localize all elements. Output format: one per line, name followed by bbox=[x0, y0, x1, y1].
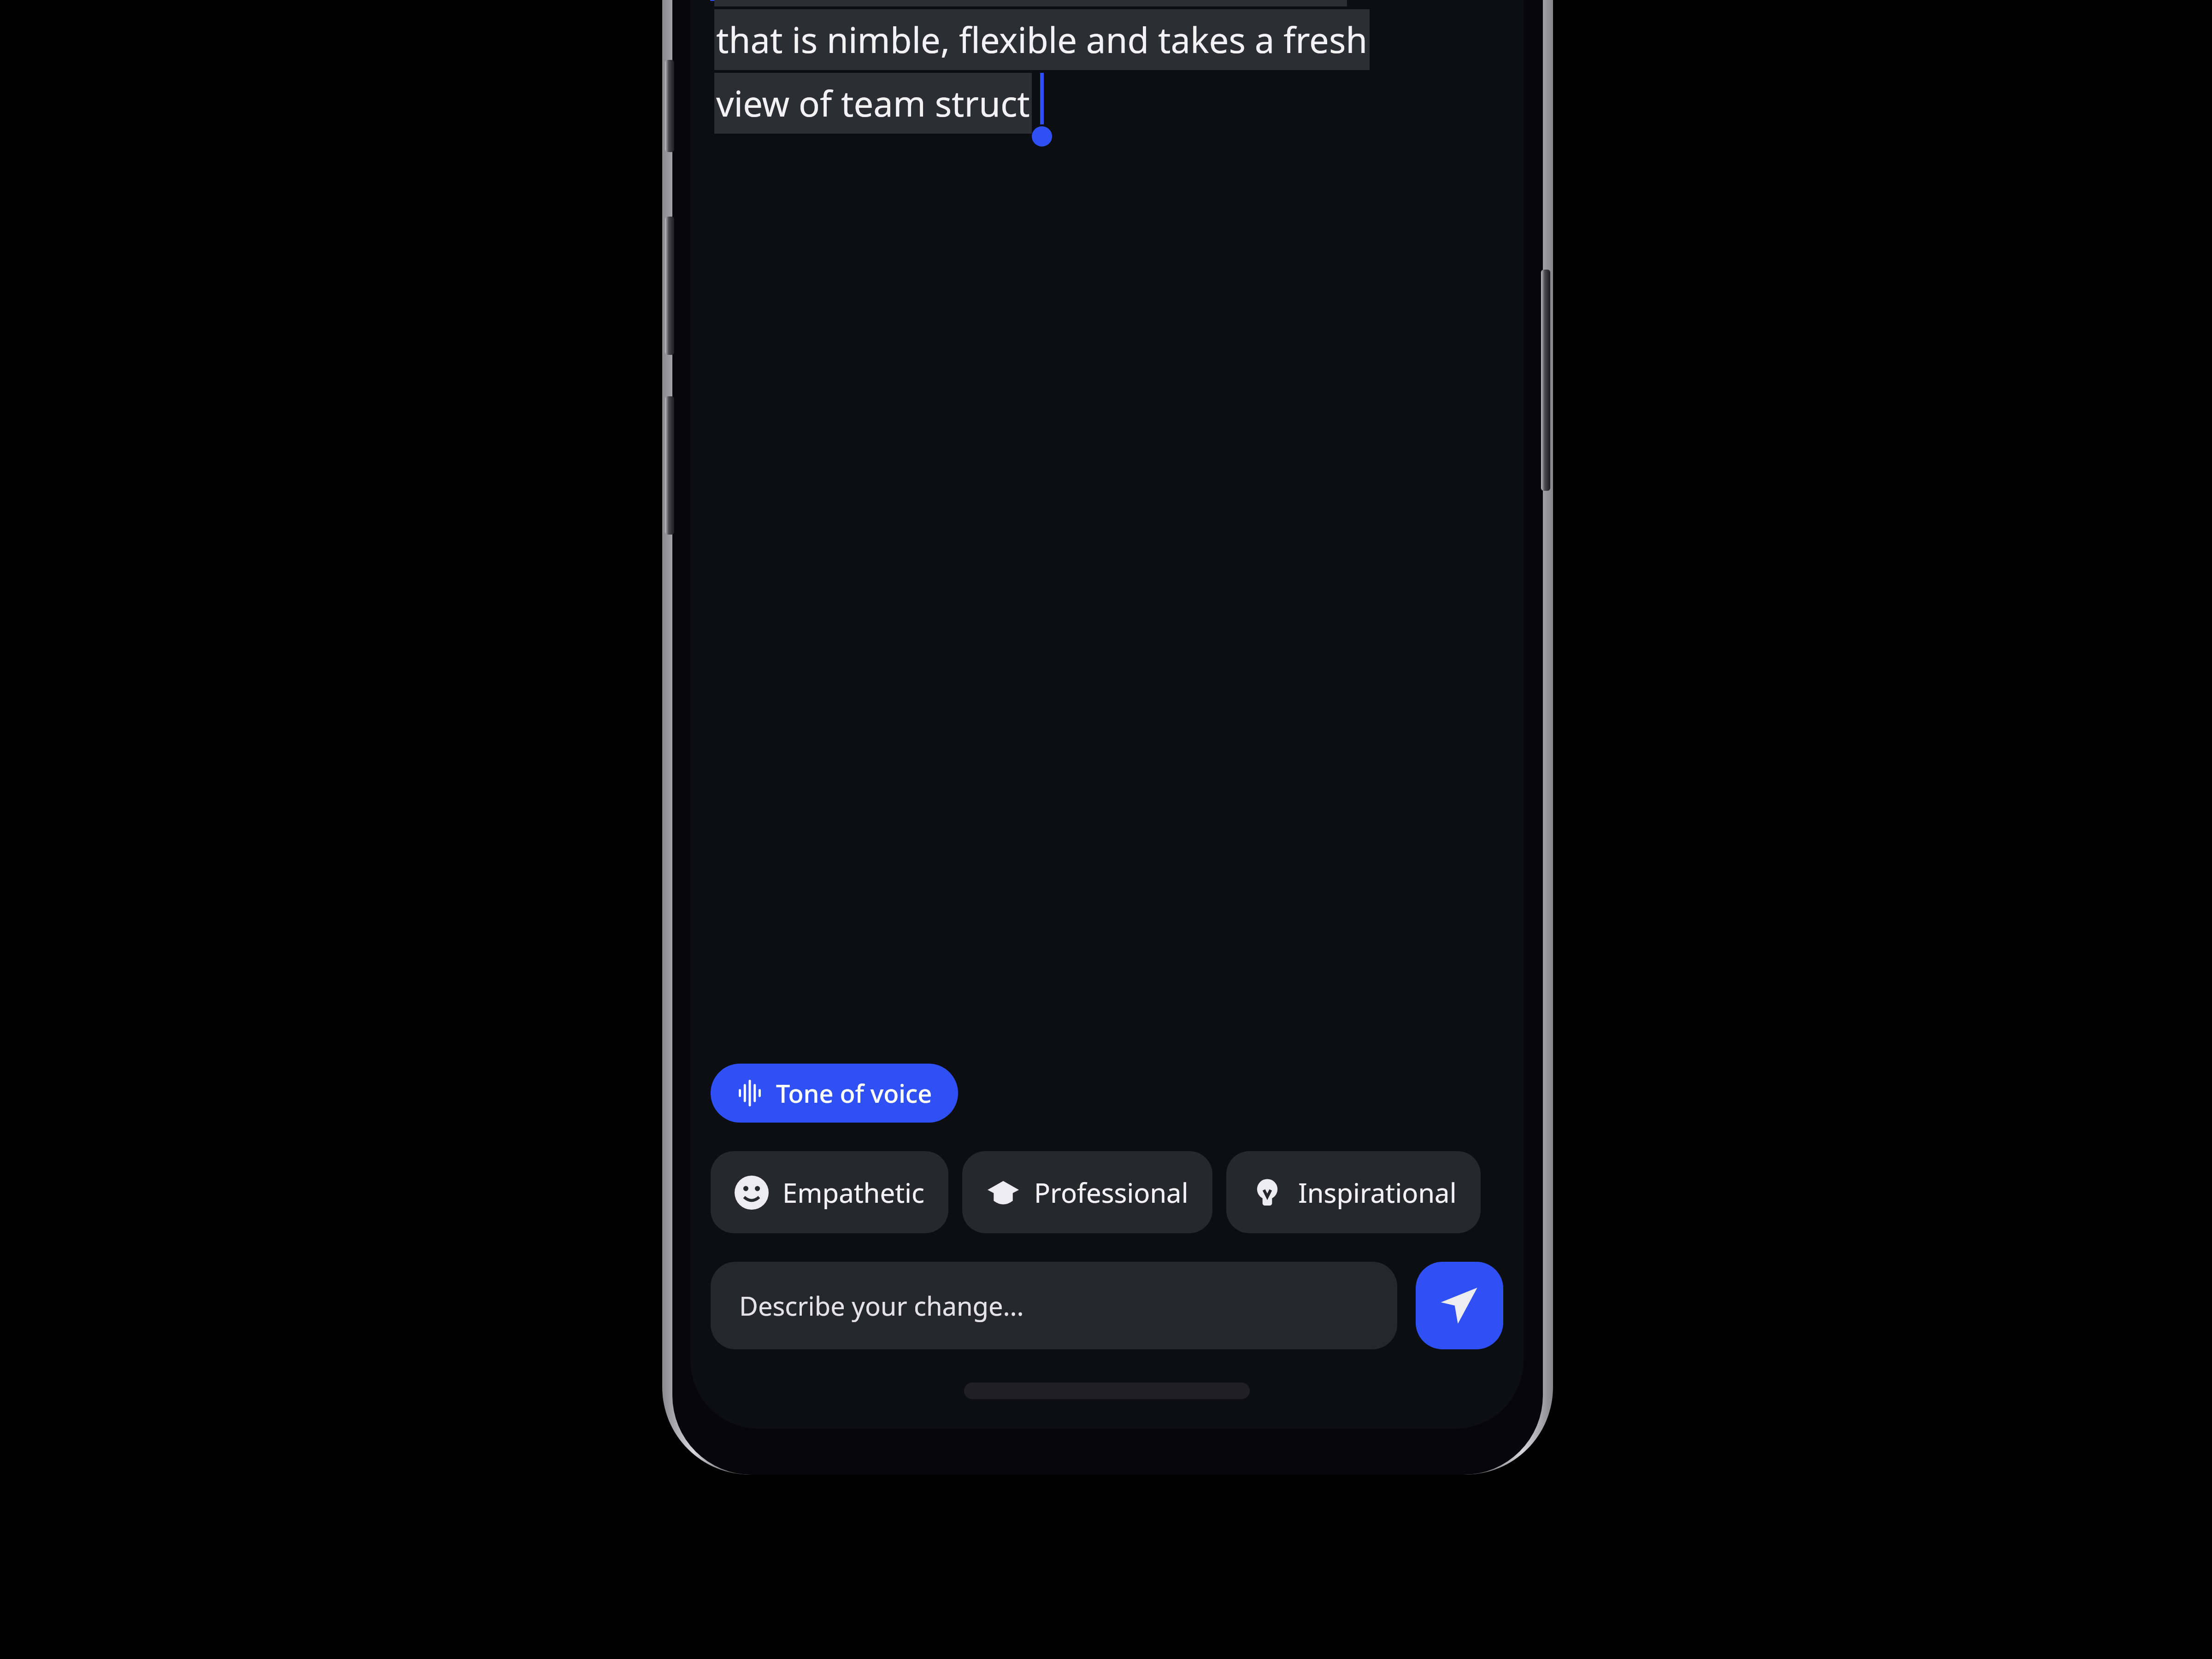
button[interactable]: Inspirational bbox=[1226, 1151, 1481, 1233]
button[interactable]: Send bbox=[1416, 1262, 1503, 1349]
staticText: Describe your change... bbox=[739, 1288, 1024, 1323]
staticText: view of team struct bbox=[716, 79, 1030, 127]
staticText: Inspirational bbox=[1298, 1174, 1457, 1211]
button[interactable]: Describe your change... bbox=[711, 1262, 1397, 1349]
staticText: Professional bbox=[1034, 1174, 1188, 1211]
staticText: that is nimble, flexible and takes a fre… bbox=[716, 16, 1368, 64]
button[interactable]: Empathetic bbox=[711, 1151, 948, 1233]
button[interactable]: Professional bbox=[962, 1151, 1212, 1233]
button[interactable]: Tone of voice bbox=[711, 1064, 958, 1123]
staticText: Tone of voice bbox=[776, 1076, 932, 1110]
staticText: Empathetic bbox=[782, 1174, 924, 1211]
